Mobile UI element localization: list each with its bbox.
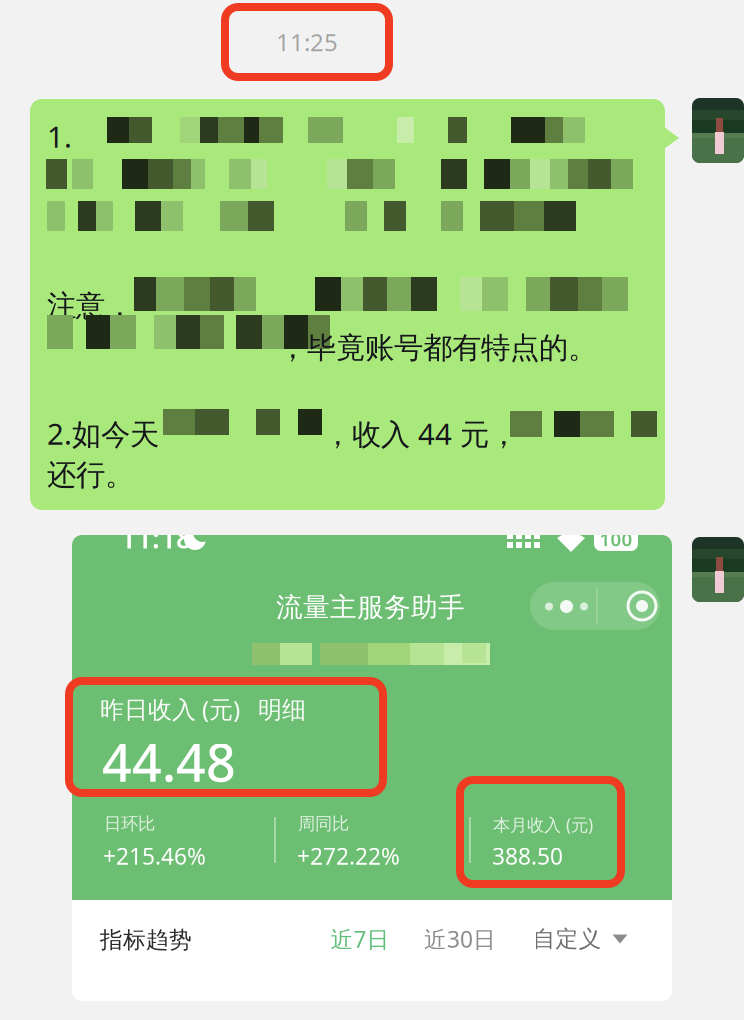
staticText: +215.46%	[103, 841, 206, 871]
staticText: 388.50	[492, 841, 563, 871]
staticText: 本月收入 (元)	[493, 813, 593, 836]
staticText: 昨日收入 (元) 明细	[100, 693, 306, 725]
button[interactable]: Contact avatar	[692, 537, 744, 602]
staticText: 2.如今天	[47, 414, 159, 453]
button[interactable]: 11:18	[72, 535, 672, 1001]
staticText: 近30日	[424, 924, 496, 954]
staticText: 指标趋势	[100, 926, 192, 954]
staticText: 11:18	[120, 519, 192, 556]
staticText: 还行。	[47, 457, 134, 493]
button[interactable]: 近7日	[317, 917, 403, 961]
staticText: 周同比	[298, 813, 349, 834]
staticText: 11:25	[276, 26, 338, 58]
staticText: 近7日	[330, 924, 389, 954]
button[interactable]: 自定义	[520, 917, 640, 961]
staticText: ，毕竟账号都有特点的。	[278, 330, 597, 366]
button[interactable]: 近30日	[410, 917, 510, 961]
staticText: ，收入 44 元，	[323, 414, 518, 453]
staticText: +272.22%	[297, 841, 400, 871]
staticText: 日环比	[104, 813, 155, 834]
staticText: 1.	[47, 117, 72, 156]
button[interactable]: 11:25	[225, 7, 389, 77]
staticText: 注意，	[47, 288, 134, 324]
staticText: 100	[599, 527, 632, 551]
button[interactable]: 1.	[30, 99, 665, 510]
button[interactable]: Contact avatar	[692, 98, 744, 163]
staticText: 自定义	[532, 925, 601, 953]
staticText: 流量主服务助手	[276, 591, 465, 624]
staticText: 44.48	[102, 727, 236, 796]
